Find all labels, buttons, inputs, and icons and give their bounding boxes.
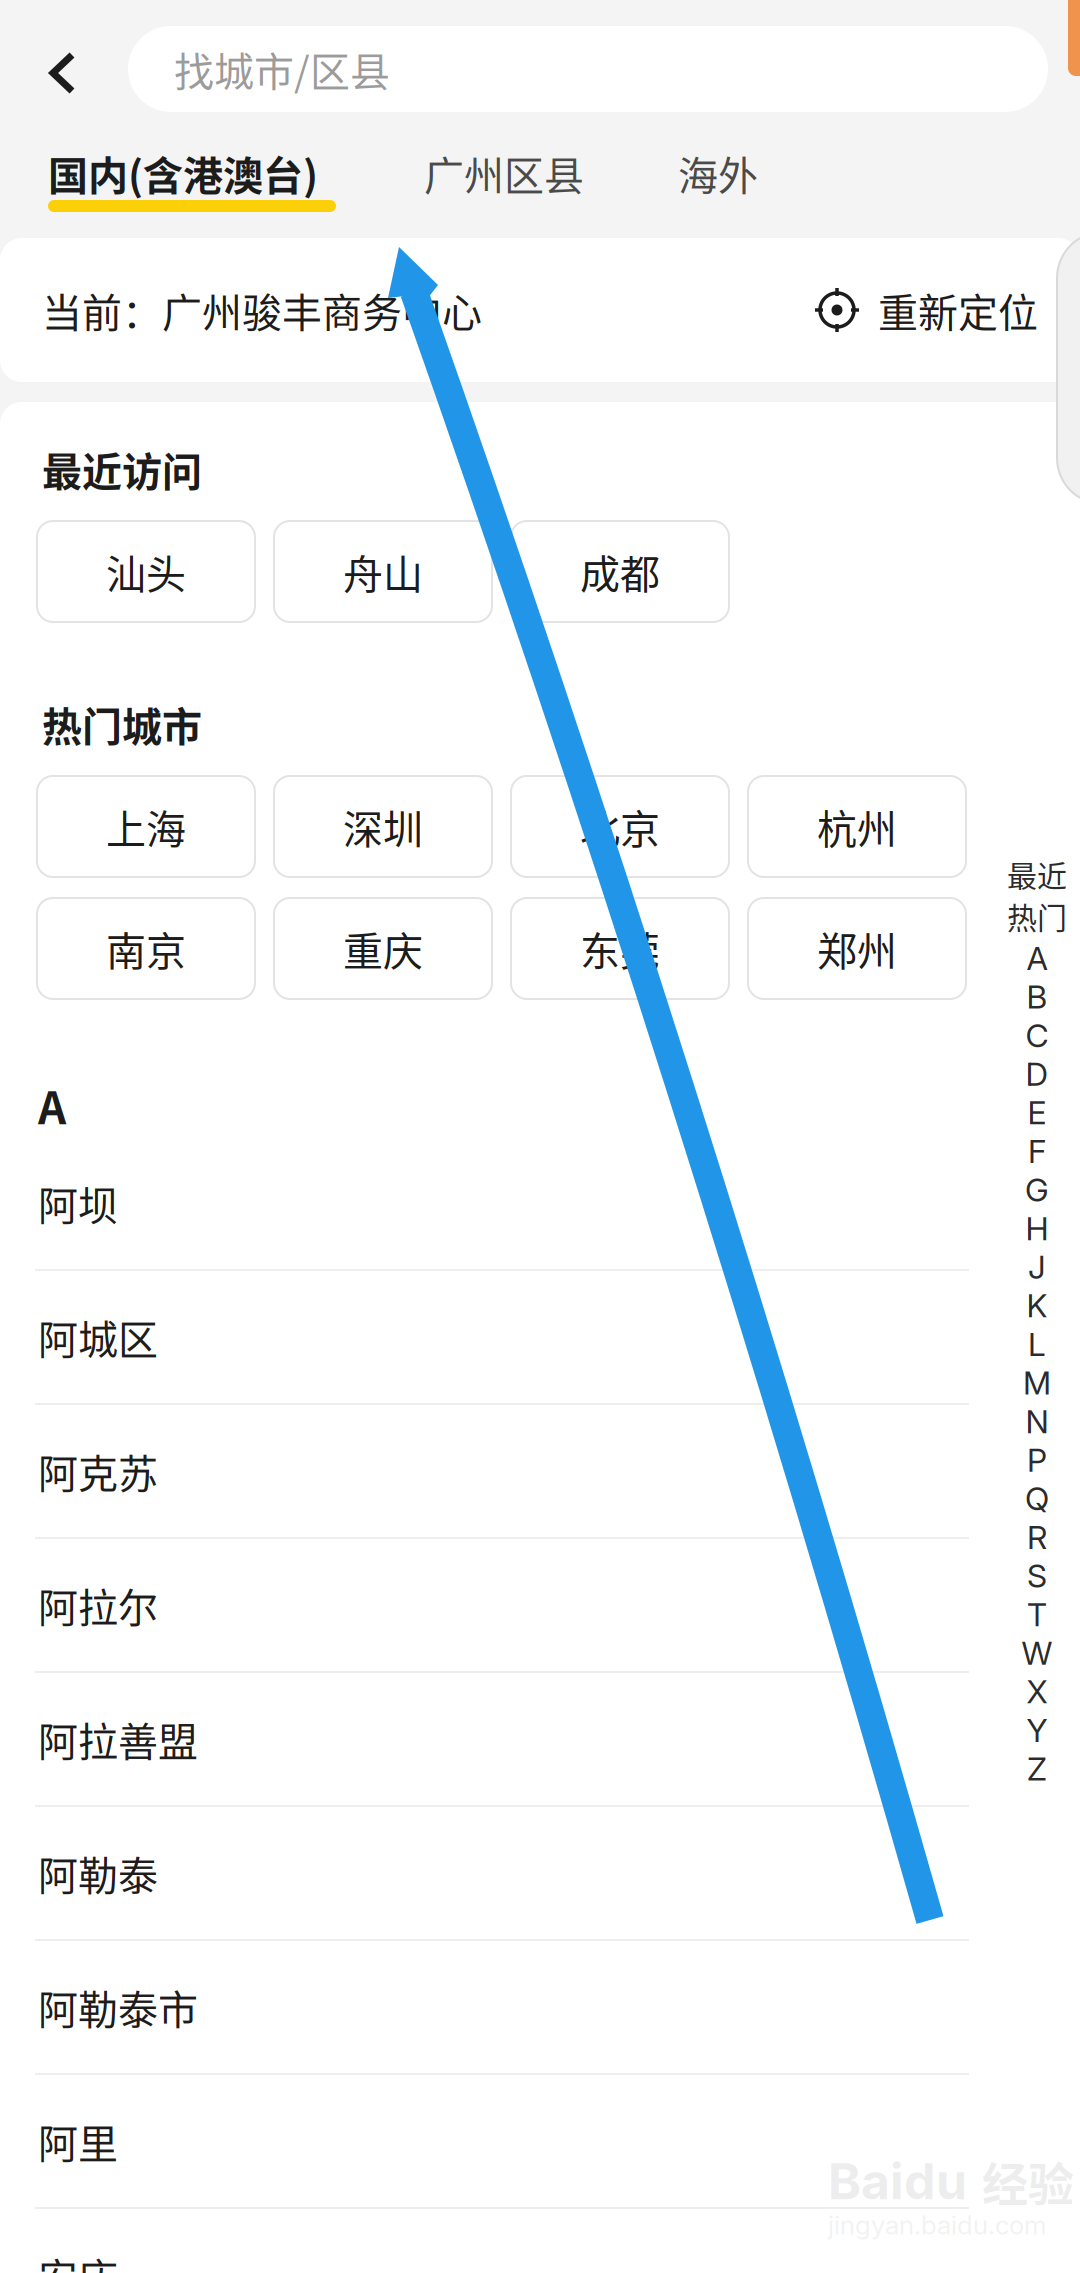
staticText: 阿勒泰市 <box>38 1978 198 2036</box>
staticText: 阿克苏 <box>38 1442 158 1500</box>
button[interactable]: 南京 <box>37 898 255 999</box>
staticText: 舟山 <box>343 542 423 600</box>
button[interactable]: F <box>1000 1132 1074 1171</box>
button[interactable]: M <box>1000 1364 1074 1402</box>
staticText: A <box>38 1073 66 1137</box>
staticText: 深圳 <box>343 797 423 855</box>
button[interactable]: 上海 <box>37 776 255 877</box>
button[interactable]: 东莞 <box>511 898 729 999</box>
button[interactable]: Q <box>1000 1479 1074 1518</box>
button[interactable]: 阿里 <box>0 2075 1080 2209</box>
staticText: 南京 <box>106 919 186 977</box>
staticText: 当前：广州骏丰商务中心 <box>42 281 482 339</box>
staticText: 郑州 <box>817 919 897 977</box>
staticText: 汕头 <box>106 542 186 600</box>
button[interactable]: G <box>1000 1171 1074 1209</box>
button[interactable]: P <box>1000 1441 1074 1479</box>
staticText: Baidu <box>828 2151 967 2211</box>
staticText: Z <box>1027 1749 1047 1788</box>
staticText: 阿勒泰 <box>38 1844 158 1902</box>
staticText: X <box>1026 1672 1047 1711</box>
button[interactable]: 最近 <box>1000 855 1074 893</box>
button[interactable]: X <box>1000 1672 1074 1711</box>
staticText: 杭州 <box>817 797 897 855</box>
staticText: 找城市/区县 <box>174 40 390 98</box>
button[interactable]: 阿克苏 <box>0 1405 1080 1539</box>
staticText: E <box>1027 1093 1046 1132</box>
staticText: 阿坝 <box>38 1174 118 1232</box>
staticText: 重庆 <box>343 919 423 977</box>
staticText: L <box>1028 1325 1046 1364</box>
button[interactable]: D <box>1000 1055 1074 1093</box>
staticText: W <box>1021 1634 1052 1672</box>
button[interactable]: Y <box>1000 1711 1074 1750</box>
staticText: 最近 <box>1007 852 1067 896</box>
staticText: 成都 <box>580 542 660 600</box>
staticText: 阿里 <box>38 2112 118 2170</box>
button[interactable]: 重新定位 <box>814 280 1038 340</box>
button[interactable]: 杭州 <box>748 776 966 877</box>
button[interactable]: K <box>1000 1286 1074 1325</box>
button[interactable]: 北京 <box>511 776 729 877</box>
button[interactable]: 热门 <box>1000 893 1074 939</box>
button[interactable]: 阿城区 <box>0 1271 1080 1405</box>
staticText: 上海 <box>106 797 186 855</box>
button[interactable]: N <box>1000 1402 1074 1441</box>
button[interactable]: B <box>1000 978 1074 1016</box>
staticText: H <box>1025 1209 1048 1248</box>
button[interactable]: T <box>1000 1595 1074 1634</box>
button[interactable]: 阿拉尔 <box>0 1539 1080 1673</box>
staticText: 阿城区 <box>38 1308 158 1366</box>
staticText: T <box>1027 1595 1047 1634</box>
button[interactable]: 广州区县 <box>424 146 584 200</box>
staticText: B <box>1026 977 1047 1016</box>
button[interactable]: 安庆 <box>0 2209 1080 2273</box>
staticText: F <box>1028 1132 1046 1171</box>
staticText: A <box>1026 939 1047 978</box>
button[interactable]: 国内(含港澳台) <box>48 146 336 212</box>
button[interactable]: 阿勒泰市 <box>0 1941 1080 2075</box>
button[interactable]: 汕头 <box>37 521 255 622</box>
staticText: C <box>1025 1016 1048 1055</box>
button[interactable]: 阿勒泰 <box>0 1807 1080 1941</box>
staticText: 经验 <box>982 2148 1074 2214</box>
staticText: J <box>1028 1248 1046 1286</box>
button[interactable]: 重庆 <box>274 898 492 999</box>
button[interactable]: W <box>1000 1634 1074 1672</box>
button[interactable]: 海外 <box>678 146 758 200</box>
staticText: R <box>1027 1518 1047 1557</box>
button[interactable]: L <box>1000 1325 1074 1364</box>
button[interactable]: 找城市/区县 <box>128 26 1048 112</box>
staticText: Q <box>1025 1479 1049 1518</box>
staticText: 北京 <box>580 797 660 855</box>
staticText: 最近访问 <box>42 440 202 498</box>
staticText: 阿拉善盟 <box>38 1710 198 1768</box>
button[interactable]: A <box>1000 939 1074 978</box>
button[interactable]: R <box>1000 1518 1074 1557</box>
staticText: jingyan.baidu.com <box>828 2209 1046 2241</box>
button[interactable]: S <box>1000 1557 1074 1595</box>
button[interactable]: 返回 <box>6 4 118 142</box>
staticText: N <box>1025 1402 1048 1441</box>
button[interactable]: C <box>1000 1016 1074 1055</box>
button[interactable]: 舟山 <box>274 521 492 622</box>
staticText: S <box>1027 1556 1047 1595</box>
button[interactable]: 郑州 <box>748 898 966 999</box>
staticText: 国内(含港澳台) <box>48 144 318 202</box>
staticText: 阿拉尔 <box>38 1576 158 1634</box>
staticText: 东莞 <box>580 919 660 977</box>
staticText: 重新定位 <box>878 281 1038 339</box>
staticText: 热门 <box>1007 894 1067 938</box>
staticText: D <box>1025 1055 1048 1093</box>
button[interactable]: E <box>1000 1093 1074 1132</box>
button[interactable]: 成都 <box>511 521 729 622</box>
button[interactable]: 阿坝 <box>0 1137 1080 1271</box>
button[interactable]: H <box>1000 1209 1074 1248</box>
staticText: K <box>1026 1286 1047 1325</box>
button[interactable]: 深圳 <box>274 776 492 877</box>
staticText: 热门城市 <box>42 695 202 753</box>
button[interactable]: 阿拉善盟 <box>0 1673 1080 1807</box>
staticText: 广州区县 <box>424 144 584 202</box>
button[interactable]: Z <box>1000 1750 1074 1788</box>
button[interactable]: J <box>1000 1248 1074 1286</box>
